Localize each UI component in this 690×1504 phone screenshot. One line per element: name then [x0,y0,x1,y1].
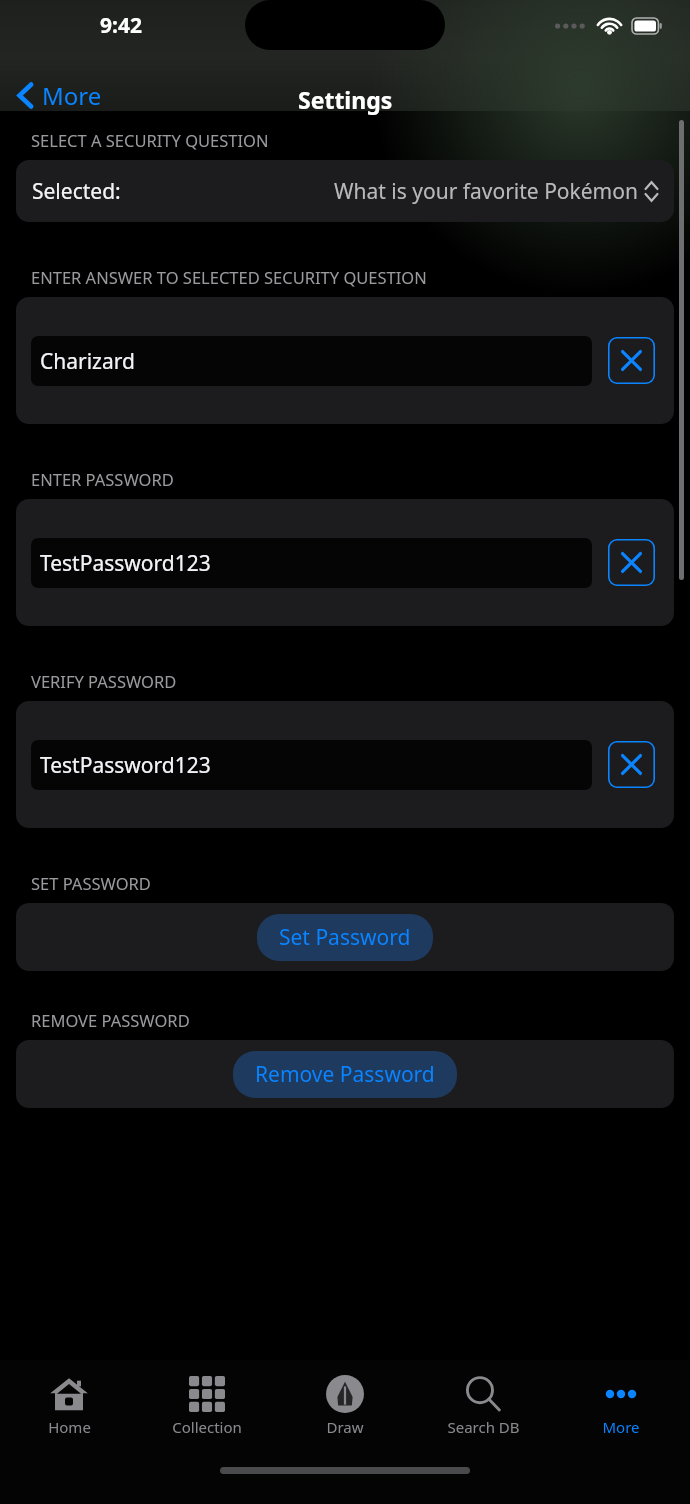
staticText: What is your favorite Pokémon [334,177,638,206]
staticText: Collection [172,1417,242,1437]
button[interactable]: Selected: [16,160,674,222]
staticText: Search DB [447,1417,520,1437]
staticText: ENTER PASSWORD [31,468,174,490]
staticText: More [42,79,102,112]
staticText: VERIFY PASSWORD [31,670,177,692]
button[interactable]: Set Password [257,914,433,961]
button[interactable]: Clear text [608,539,655,586]
button[interactable]: More [8,74,112,117]
staticText: Home [48,1417,91,1437]
staticText: SET PASSWORD [31,872,151,894]
staticText: Remove Password [255,1060,435,1089]
staticText: Selected: [32,177,121,206]
button[interactable]: TestPassword123 [31,538,592,588]
staticText: SELECT A SECURITY QUESTION [31,129,269,151]
button[interactable]: Collection [138,1372,276,1452]
staticText: Charizard [40,347,135,376]
button[interactable]: Remove Password [233,1051,457,1098]
button[interactable]: Draw [276,1372,414,1452]
staticText: Settings [298,84,393,115]
button[interactable]: Clear text [608,741,655,788]
button[interactable]: Charizard [31,336,592,386]
button[interactable]: Clear text [608,337,655,384]
staticText: More [602,1417,640,1437]
button[interactable]: More [552,1372,690,1452]
button[interactable]: Search DB [414,1372,552,1452]
staticText: Draw [326,1417,364,1437]
button[interactable]: Home [0,1372,138,1452]
staticText: REMOVE PASSWORD [31,1009,190,1031]
staticText: ENTER ANSWER TO SELECTED SECURITY QUESTI… [31,266,427,288]
staticText: Set Password [279,923,411,952]
staticText: TestPassword123 [40,751,211,780]
button[interactable]: TestPassword123 [31,740,592,790]
staticText: TestPassword123 [40,549,211,578]
staticText: 9:42 [100,11,142,40]
